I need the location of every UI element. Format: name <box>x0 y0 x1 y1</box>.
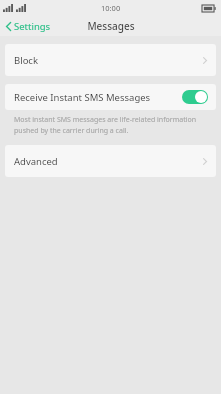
button[interactable]: Settings <box>0 17 59 36</box>
staticText: Settings <box>14 20 51 33</box>
button[interactable]: Receive Instant SMS Messages toggle, on <box>182 90 208 104</box>
other: Open Block <box>203 57 207 64</box>
other: Open Advanced <box>203 158 207 165</box>
button[interactable]: Block <box>5 44 216 76</box>
staticText: Advanced <box>14 155 203 168</box>
button[interactable]: Advanced <box>5 145 216 177</box>
staticText: Most instant SMS messages are life-relat… <box>14 115 205 135</box>
staticText: Messages <box>87 19 135 33</box>
staticText: Receive Instant SMS Messages <box>14 91 182 104</box>
staticText: 10:00 <box>101 3 121 13</box>
staticText: Block <box>14 54 203 67</box>
button[interactable]: Receive Instant SMS Messages <box>5 84 216 110</box>
